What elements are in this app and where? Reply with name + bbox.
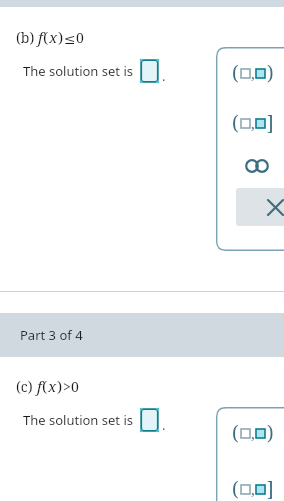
button[interactable]: Answer input xyxy=(140,408,159,432)
staticText: ( xyxy=(232,60,239,86)
staticText: x xyxy=(48,376,57,396)
staticText: ( xyxy=(232,476,239,501)
staticText: ] xyxy=(267,110,274,136)
button[interactable]: Infinity xyxy=(240,155,274,177)
button[interactable]: ( xyxy=(230,58,276,88)
staticText: ( xyxy=(43,27,49,47)
staticText: , xyxy=(251,479,255,499)
staticText: 0 xyxy=(71,377,79,396)
staticText: , xyxy=(251,423,255,443)
staticText: Part 3 of 4 xyxy=(20,326,83,344)
staticText: , xyxy=(251,113,255,133)
staticText: The solution set is xyxy=(23,62,133,80)
staticText: ) xyxy=(267,420,274,446)
staticText: ( xyxy=(232,420,239,446)
staticText: ) xyxy=(58,27,64,47)
button[interactable]: Close keypad xyxy=(236,188,284,226)
staticText: f xyxy=(37,376,42,396)
button[interactable]: ( xyxy=(230,474,276,501)
button[interactable]: Answer input xyxy=(140,59,159,83)
staticText: ( xyxy=(232,110,239,136)
staticText: ≤ xyxy=(64,31,76,47)
staticText: (b) xyxy=(16,28,38,47)
staticText: The solution set is xyxy=(23,411,133,429)
staticText: ) xyxy=(267,60,274,86)
button[interactable]: ( xyxy=(230,108,276,138)
staticText: (c) xyxy=(16,377,37,396)
staticText: , xyxy=(251,63,255,83)
staticText: f xyxy=(38,27,43,47)
staticText: ] xyxy=(267,476,274,501)
staticText: . xyxy=(162,67,166,85)
staticText: x xyxy=(49,27,58,47)
staticText: . xyxy=(162,416,166,434)
staticText: ( xyxy=(42,376,48,396)
staticText: 0 xyxy=(76,28,84,47)
staticText: > xyxy=(63,377,71,396)
staticText: ) xyxy=(57,376,63,396)
button[interactable]: ( xyxy=(230,418,276,448)
